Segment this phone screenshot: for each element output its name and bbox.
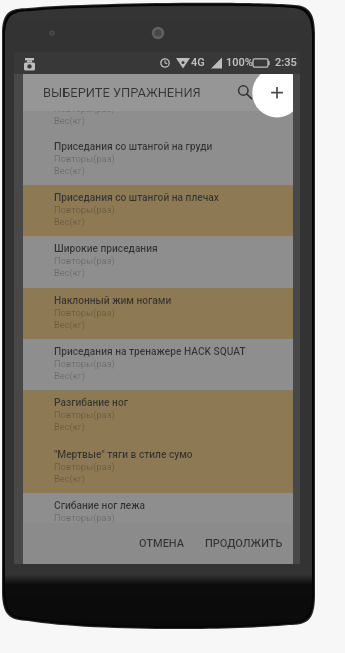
staticText: Вес(кг) [54, 370, 85, 381]
staticText: ОТМЕНА [139, 537, 185, 550]
staticText: 2:35 [275, 56, 297, 69]
button[interactable]: Сгибание ног лежа [23, 493, 293, 544]
staticText: 4G [191, 56, 205, 69]
staticText: Повторы(раз) [54, 103, 115, 114]
staticText: Приседания со штангой на плечах [54, 192, 219, 204]
button[interactable]: Наклонный жим ногами [23, 288, 293, 339]
staticText: Повторы(раз) [54, 461, 115, 472]
staticText: Вес(кг) [54, 216, 85, 227]
staticText: Вес(кг) [54, 115, 85, 126]
staticText: Вес(кг) [54, 319, 85, 330]
staticText: Повторы(раз) [54, 358, 115, 369]
staticText: Повторы(раз) [54, 153, 115, 164]
staticText: Повторы(раз) [54, 204, 115, 215]
staticText: ПРОДОЛЖИТЬ [205, 537, 283, 550]
staticText: Широкие приседания [54, 243, 158, 255]
staticText: Вес(кг) [54, 421, 85, 432]
staticText: Сгибание ног лежа [54, 500, 146, 512]
staticText: 100% [226, 56, 253, 69]
button[interactable]: Приседания со штангой на груди [23, 134, 293, 185]
staticText: Повторы(раз) [54, 255, 115, 266]
button[interactable]: Приседания на тренажере HACK SQUAT [23, 339, 293, 390]
staticText: Вес(кг) [54, 473, 85, 484]
button[interactable]: Разгибание ног [23, 390, 293, 442]
staticText: Повторы(раз) [54, 307, 115, 318]
staticText: "Мертвые" тяги в стиле сумо [54, 449, 193, 461]
button[interactable]: ОТМЕНА [129, 528, 195, 559]
button[interactable]: Search [231, 78, 255, 102]
staticText: Разгибание ног [54, 397, 128, 409]
staticText: Приседания на тренажере HACK SQUAT [54, 346, 246, 358]
staticText: Вес(кг) [54, 165, 85, 176]
button[interactable]: Add [252, 74, 293, 118]
staticText: Наклонный жим ногами [54, 295, 172, 307]
button[interactable]: Широкие приседания [23, 236, 293, 288]
button[interactable]: ПРОДОЛЖИТЬ [195, 528, 293, 559]
button[interactable]: "Мертвые" тяги в стиле сумо [23, 442, 293, 493]
staticText: Вес(кг) [54, 267, 85, 278]
staticText: Повторы(раз) [54, 409, 115, 420]
button[interactable]: Приседания со штангой на плечах [23, 185, 293, 236]
staticText: Приседания со штангой на груди [54, 141, 213, 153]
staticText: ВЫБЕРИТЕ УПРАЖНЕНИЯ [43, 85, 201, 100]
staticText: Повторы(раз) [54, 512, 115, 523]
